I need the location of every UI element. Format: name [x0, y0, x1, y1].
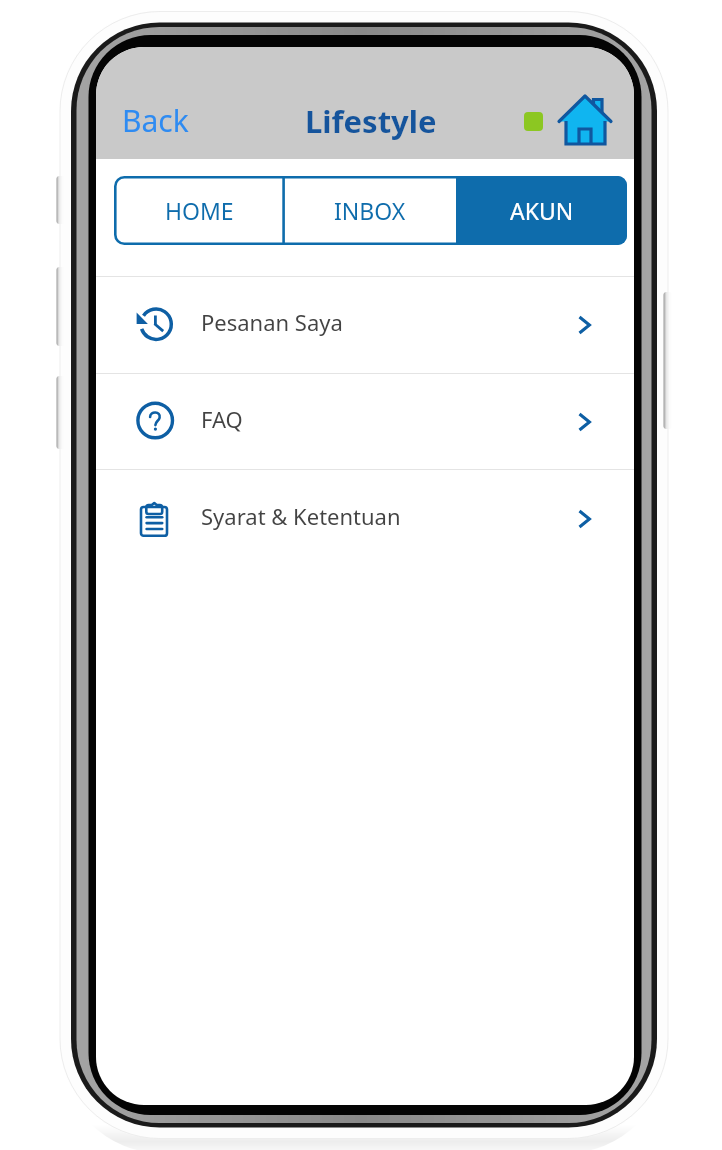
staticText: INBOX — [334, 195, 406, 226]
staticText: Back — [122, 100, 189, 141]
staticText: Pesanan Saya — [201, 307, 343, 337]
button[interactable]: INBOX — [284, 176, 456, 245]
button[interactable]: Home — [552, 90, 618, 152]
staticText: HOME — [165, 195, 234, 226]
staticText: AKUN — [510, 195, 574, 226]
button[interactable]: FAQ — [96, 374, 634, 469]
button[interactable]: Back — [104, 88, 207, 153]
staticText: Syarat & Ketentuan — [201, 501, 401, 531]
button[interactable]: AKUN — [456, 176, 627, 245]
button[interactable]: Syarat & Ketentuan — [96, 470, 634, 567]
staticText: Lifestyle — [305, 100, 437, 142]
button[interactable]: Pesanan Saya — [96, 277, 634, 373]
staticText: FAQ — [201, 404, 243, 434]
button[interactable]: HOME — [114, 176, 284, 245]
